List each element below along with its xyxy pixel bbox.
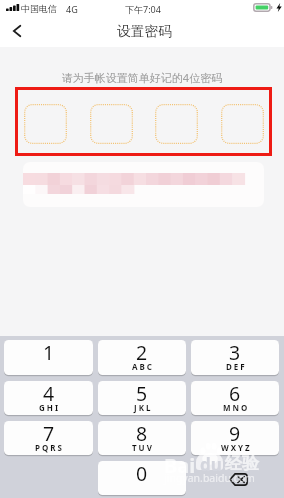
staticText: TUV [132, 442, 154, 453]
button[interactable]: Password digit [24, 104, 67, 144]
staticText: MNO [223, 402, 250, 413]
button[interactable]: 7 [4, 421, 93, 455]
staticText: 2 [136, 340, 148, 366]
staticText: 7 [43, 421, 55, 447]
staticText: jingyan.baidu.com [164, 471, 255, 485]
staticText: 1 [43, 340, 55, 366]
button[interactable]: 4 [4, 381, 93, 415]
staticText: DEF [226, 361, 247, 372]
staticText: GHI [39, 402, 61, 413]
staticText: 4G [66, 3, 78, 15]
staticText: ABC [132, 361, 154, 372]
button[interactable]: 2 [98, 340, 186, 375]
staticText: 6 [229, 381, 241, 407]
staticText: WXYZ [221, 442, 252, 453]
staticText: 9 [229, 421, 241, 447]
button[interactable]: 9 [191, 421, 279, 455]
staticText: 4 [43, 381, 55, 407]
staticText: 3 [229, 340, 241, 366]
button[interactable]: 6 [191, 381, 279, 415]
staticText: JKL [134, 402, 153, 413]
staticText: 8 [136, 421, 148, 447]
staticText: du [200, 453, 222, 476]
button[interactable]: Password digit [155, 104, 198, 144]
button[interactable]: Password digit [221, 104, 264, 144]
staticText: PQRS [35, 442, 64, 453]
button[interactable]: 8 [98, 421, 186, 455]
button[interactable]: Back [4, 15, 29, 47]
staticText: 下午7:04 [125, 3, 161, 15]
button[interactable]: 1 [4, 340, 93, 375]
staticText: 设置密码 [117, 23, 173, 40]
staticText: 0 [136, 461, 148, 487]
button[interactable]: Backspace [191, 461, 279, 495]
staticText: 请为手帐设置简单好记的4位密码 [0, 70, 284, 85]
staticText: Bai [164, 452, 196, 479]
button[interactable]: Password digit [90, 104, 133, 144]
button[interactable]: 5 [98, 381, 186, 415]
staticText: 5 [136, 381, 148, 407]
staticText: 中国电信 [21, 3, 57, 14]
button[interactable]: 0 [98, 461, 186, 495]
button[interactable]: 3 [191, 340, 279, 375]
staticText: 经验 [225, 453, 259, 474]
